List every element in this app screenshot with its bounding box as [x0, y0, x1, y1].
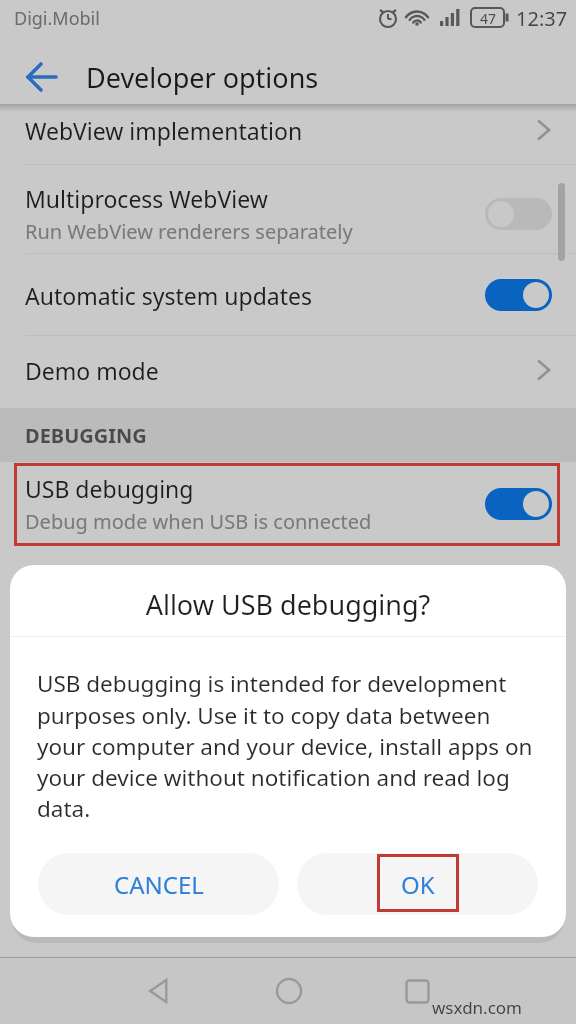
staticText: wsxdn.com: [432, 996, 523, 1019]
button[interactable]: Multiprocess WebView: [25, 176, 552, 252]
staticText: Run WebView renderers separately: [25, 218, 353, 245]
staticText: Allow USB debugging?: [10, 586, 566, 623]
button[interactable]: [146, 978, 172, 1004]
staticText: CANCEL: [114, 868, 204, 901]
staticText: Multiprocess WebView: [25, 183, 268, 214]
staticText: USB debugging: [25, 473, 194, 504]
staticText: OK: [401, 868, 435, 901]
staticText: 12:37: [516, 5, 568, 32]
staticText: 47: [480, 9, 497, 28]
button[interactable]: [26, 61, 60, 93]
button[interactable]: CANCEL: [38, 853, 279, 915]
staticText: Developer options: [86, 59, 319, 96]
button[interactable]: [485, 198, 552, 230]
button[interactable]: Demo mode: [25, 344, 552, 396]
button[interactable]: [405, 979, 430, 1004]
staticText: Demo mode: [25, 355, 536, 386]
staticText: DEBUGGING: [25, 422, 147, 449]
button[interactable]: [275, 977, 303, 1005]
button[interactable]: OK: [297, 853, 538, 915]
staticText: Digi.Mobil: [14, 6, 100, 31]
staticText: WebView implementation: [25, 115, 536, 146]
staticText: Debug mode when USB is connected: [25, 508, 372, 535]
button[interactable]: USB debugging: [25, 462, 552, 546]
button[interactable]: WebView implementation: [25, 104, 552, 156]
staticText: Automatic system updates: [25, 280, 485, 311]
button[interactable]: Automatic system updates: [25, 268, 552, 322]
button[interactable]: [485, 279, 552, 311]
staticText: USB debugging is intended for developmen…: [37, 668, 549, 823]
button[interactable]: [485, 488, 552, 520]
